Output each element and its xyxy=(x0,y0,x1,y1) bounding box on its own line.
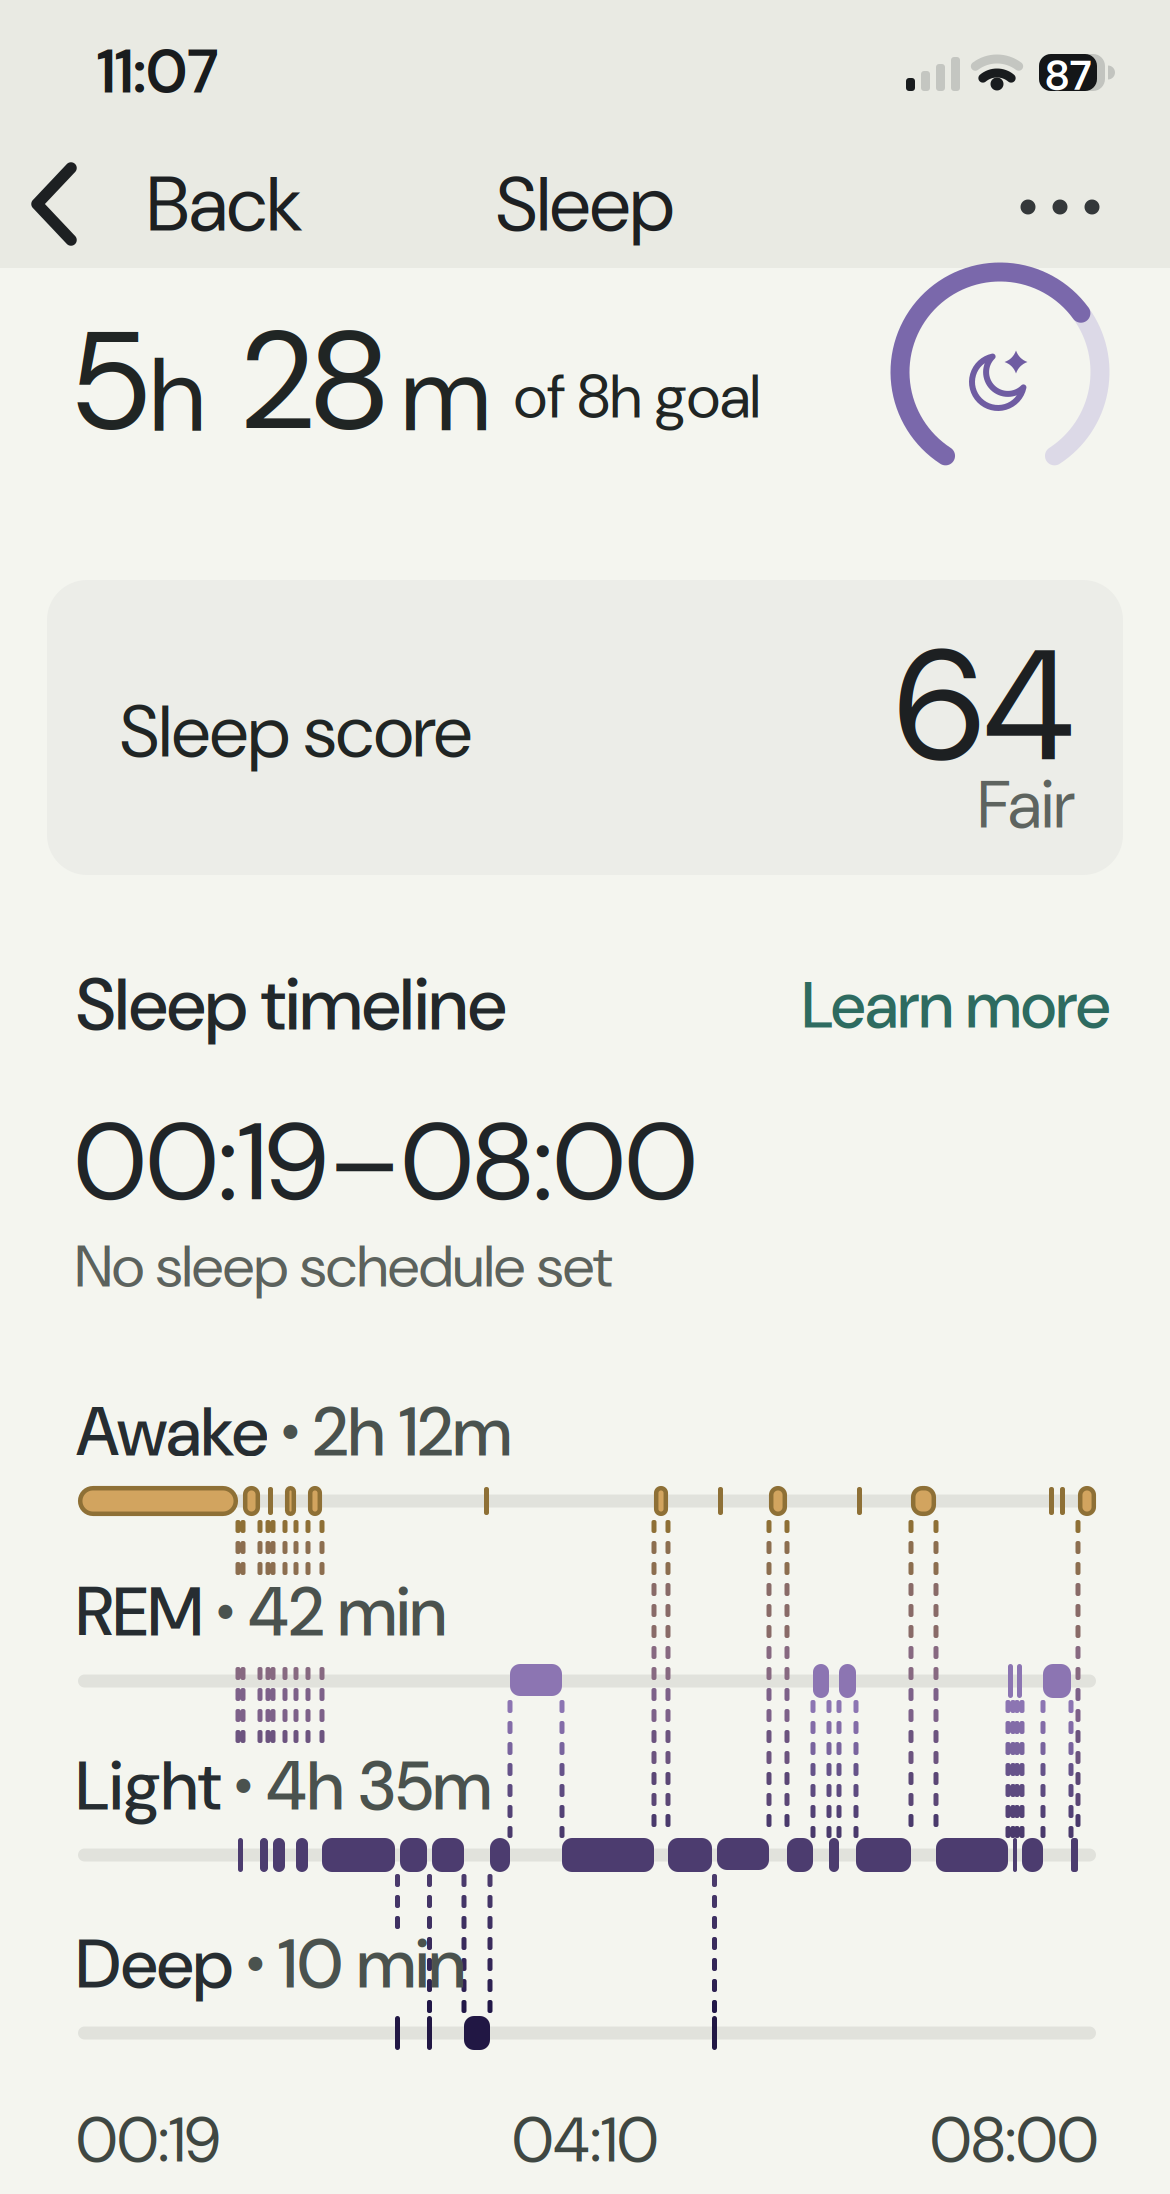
staticText: of 8h goal xyxy=(514,358,760,436)
staticText: 00:19 xyxy=(76,2100,221,2181)
staticText: • xyxy=(233,1926,278,2002)
staticText: No sleep schedule set xyxy=(75,1228,612,1305)
staticText: 04:10 xyxy=(512,2100,658,2181)
staticText: 42 min xyxy=(248,1568,446,1656)
staticText: 28 xyxy=(243,291,387,471)
staticText: Light xyxy=(76,1742,221,1830)
staticText: Back xyxy=(147,155,303,254)
staticText: Fair xyxy=(978,762,1075,848)
button[interactable]: Sleep score xyxy=(47,580,1123,875)
staticText: Sleep xyxy=(496,155,674,254)
staticText: 2h 12m xyxy=(313,1388,511,1476)
staticText: 87 xyxy=(1044,48,1091,103)
staticText: 4h 35m xyxy=(266,1742,491,1830)
staticText: • xyxy=(268,1394,313,1470)
staticText: Awake xyxy=(76,1388,268,1476)
staticText: • xyxy=(203,1574,248,1650)
staticText: Sleep score xyxy=(120,685,472,779)
staticText: 64 xyxy=(894,605,1075,807)
staticText: 11:07 xyxy=(97,33,219,111)
button[interactable]: Back xyxy=(0,0,1170,2194)
staticText: 08:00 xyxy=(930,2100,1098,2181)
button[interactable]: Learn more xyxy=(802,964,1110,1047)
staticText: m xyxy=(402,327,490,462)
staticText: Deep xyxy=(76,1920,233,2008)
staticText: Learn more xyxy=(802,964,1110,1047)
button[interactable] xyxy=(0,0,1170,2194)
staticText: 10 min xyxy=(278,1920,465,2008)
staticText: 5 xyxy=(74,291,149,471)
staticText: h xyxy=(150,327,205,462)
staticText: REM xyxy=(76,1568,203,1656)
staticText: • xyxy=(221,1748,266,1824)
staticText: Sleep timeline xyxy=(76,958,506,1052)
staticText: 00:19–08:00 xyxy=(74,1092,697,1233)
